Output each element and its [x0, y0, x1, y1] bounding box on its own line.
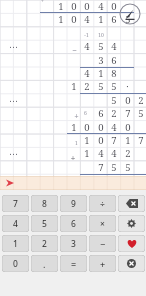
staticText: =: [71, 258, 77, 270]
button[interactable]: Settings: [118, 215, 145, 232]
button[interactable]: 4: [2, 215, 29, 232]
staticText: 2: [125, 147, 131, 160]
button[interactable]: −: [89, 235, 116, 252]
staticText: 4: [13, 218, 18, 230]
staticText: 6: [111, 54, 117, 67]
button[interactable]: Pen tool: [119, 3, 141, 25]
button[interactable]: .: [31, 255, 58, 272]
button[interactable]: Expand calculation: [7, 40, 20, 53]
staticText: 1: [125, 134, 131, 147]
staticText: 0: [98, 121, 104, 134]
staticText: 2: [84, 174, 90, 187]
staticText: 2: [84, 80, 90, 93]
staticText: 7: [111, 134, 117, 147]
button[interactable]: 1: [2, 235, 29, 252]
staticText: 4: [111, 121, 117, 134]
button[interactable]: Expand calculation: [7, 94, 20, 107]
staticText: 7: [98, 161, 104, 174]
button[interactable]: ÷: [89, 195, 116, 212]
button[interactable]: Backspace: [118, 195, 145, 212]
staticText: 2: [42, 238, 47, 250]
staticText: 5: [98, 80, 104, 93]
staticText: ⋯: [9, 149, 18, 159]
button[interactable]: 6: [60, 215, 87, 232]
staticText: 7: [13, 198, 18, 210]
staticText: +: [74, 110, 79, 121]
button[interactable]: Input line: [0, 176, 146, 190]
staticText: ⋯: [9, 42, 18, 52]
staticText: 2: [111, 107, 117, 120]
staticText: 2: [138, 94, 144, 107]
button[interactable]: 2: [31, 235, 58, 252]
staticText: 0: [98, 134, 104, 147]
staticText: 1: [71, 121, 77, 134]
staticText: ×: [100, 218, 105, 230]
staticText: ÷: [100, 198, 105, 210]
staticText: 6: [84, 110, 87, 117]
staticText: 3: [71, 238, 76, 250]
staticText: 1: [98, 67, 104, 80]
button[interactable]: 0: [2, 255, 29, 272]
staticText: 4: [84, 67, 90, 80]
staticText: 5: [125, 13, 131, 26]
staticText: 0: [125, 121, 131, 134]
staticText: 4: [84, 40, 90, 53]
staticText: 7: [125, 174, 131, 187]
staticText: ⋯: [9, 96, 18, 106]
button[interactable]: +: [89, 255, 116, 272]
staticText: 8: [111, 67, 117, 80]
staticText: 1: [58, 0, 64, 13]
staticText: 5: [42, 218, 47, 230]
staticText: 1: [98, 13, 104, 26]
staticText: 4: [98, 0, 104, 13]
staticText: 8: [42, 198, 47, 210]
staticText: 1: [75, 140, 78, 147]
staticText: 4: [98, 147, 104, 160]
staticText: 5: [125, 161, 131, 174]
staticText: 5: [111, 94, 117, 107]
button[interactable]: Clear: [118, 255, 145, 272]
staticText: 5: [98, 40, 104, 53]
staticText: 7: [125, 107, 131, 120]
staticText: 1: [58, 13, 64, 26]
button[interactable]: Expand calculation: [7, 147, 20, 160]
button[interactable]: =: [60, 255, 87, 272]
staticText: 5: [111, 161, 117, 174]
staticText: 9: [71, 198, 76, 210]
staticText: +: [41, 0, 44, 5]
staticText: 1: [84, 134, 90, 147]
staticText: ·: [126, 80, 129, 93]
staticText: 1: [84, 147, 90, 160]
staticText: 4: [111, 40, 117, 53]
staticText: 7: [138, 134, 144, 147]
button[interactable]: 3: [60, 235, 87, 252]
button[interactable]: Favorite: [118, 235, 145, 252]
staticText: 6: [71, 218, 76, 230]
staticText: +: [70, 151, 76, 163]
staticText: 1: [71, 80, 77, 93]
staticText: 4: [84, 13, 90, 26]
button[interactable]: 5: [31, 215, 58, 232]
staticText: 10: [98, 32, 104, 39]
button[interactable]: ×: [89, 215, 116, 232]
staticText: +: [100, 258, 106, 270]
staticText: −: [72, 44, 77, 55]
staticText: 0: [71, 13, 77, 26]
staticText: 9: [111, 174, 117, 187]
staticText: −: [100, 238, 106, 250]
staticText: 6: [98, 107, 104, 120]
staticText: 0: [111, 0, 117, 13]
staticText: 0: [13, 258, 18, 270]
staticText: 5: [111, 80, 117, 93]
staticText: 5: [138, 107, 144, 120]
staticText: 3: [98, 54, 104, 67]
staticText: 0: [84, 0, 90, 13]
button[interactable]: 8: [31, 195, 58, 212]
staticText: 0: [84, 121, 90, 134]
staticText: 0: [71, 0, 77, 13]
button[interactable]: 7: [2, 195, 29, 212]
staticText: 1: [98, 174, 104, 187]
staticText: -1: [84, 32, 89, 39]
button[interactable]: 9: [60, 195, 87, 212]
staticText: 0: [125, 94, 131, 107]
